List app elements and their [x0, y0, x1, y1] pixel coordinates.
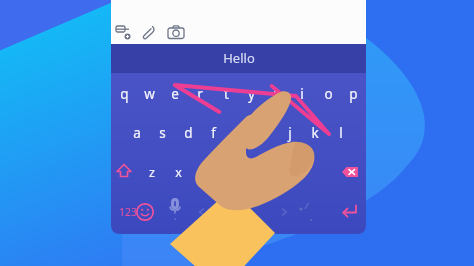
button[interactable]: a	[126, 123, 148, 143]
button[interactable]: f	[202, 123, 224, 143]
button[interactable]: Attach file	[138, 21, 160, 43]
staticText: d	[184, 124, 193, 142]
button[interactable]: t	[215, 84, 237, 104]
button[interactable]: p	[342, 84, 364, 104]
button[interactable]: Enter	[338, 201, 360, 223]
staticText: 123	[119, 205, 138, 219]
button[interactable]: i	[291, 84, 313, 104]
button[interactable]: h	[253, 123, 275, 143]
button[interactable]: Hello	[199, 46, 279, 70]
staticText: l	[339, 124, 343, 142]
button[interactable]: Camera	[165, 21, 187, 43]
staticText: o	[324, 85, 333, 103]
button[interactable]: q	[113, 84, 135, 104]
staticText: h	[260, 124, 269, 142]
button[interactable]: w	[138, 84, 160, 104]
staticText: p	[349, 85, 358, 103]
button[interactable]: c	[192, 162, 214, 182]
button[interactable]: j	[279, 123, 301, 143]
staticText: s	[159, 124, 166, 142]
staticText: x	[175, 164, 182, 181]
button[interactable]: Insert sticker	[112, 21, 134, 43]
button[interactable]: d	[177, 123, 199, 143]
button[interactable]: Backspace	[339, 161, 361, 183]
staticText: z	[149, 164, 155, 181]
button[interactable]: x	[167, 162, 189, 182]
staticText: w	[144, 85, 155, 103]
button[interactable]: r	[189, 84, 211, 104]
button[interactable]: s	[151, 123, 173, 143]
button[interactable]: u	[266, 84, 288, 104]
staticText: f	[211, 124, 216, 142]
staticText: c	[200, 164, 207, 181]
staticText: t	[224, 85, 229, 103]
staticText: i	[300, 85, 304, 103]
staticText: k	[311, 124, 319, 142]
staticText: y	[248, 85, 255, 103]
button[interactable]: 123	[112, 203, 144, 221]
button[interactable]: Shift	[113, 161, 135, 183]
button[interactable]: g	[228, 123, 250, 143]
button[interactable]: e	[164, 84, 186, 104]
button[interactable]: Emoji	[134, 201, 156, 223]
button[interactable]: y	[240, 84, 262, 104]
staticText: e	[171, 85, 179, 103]
button[interactable]: k	[304, 123, 326, 143]
staticText: q	[120, 85, 129, 103]
staticText: j	[288, 124, 292, 142]
staticText: r	[197, 85, 203, 103]
button[interactable]: Voice input	[164, 196, 186, 218]
staticText: u	[273, 85, 282, 103]
button[interactable]: z	[141, 162, 163, 182]
button[interactable]: o	[317, 84, 339, 104]
staticText: Hello	[223, 49, 255, 67]
button[interactable]: l	[330, 123, 352, 143]
staticText: a	[133, 124, 141, 142]
staticText: g	[235, 124, 244, 142]
